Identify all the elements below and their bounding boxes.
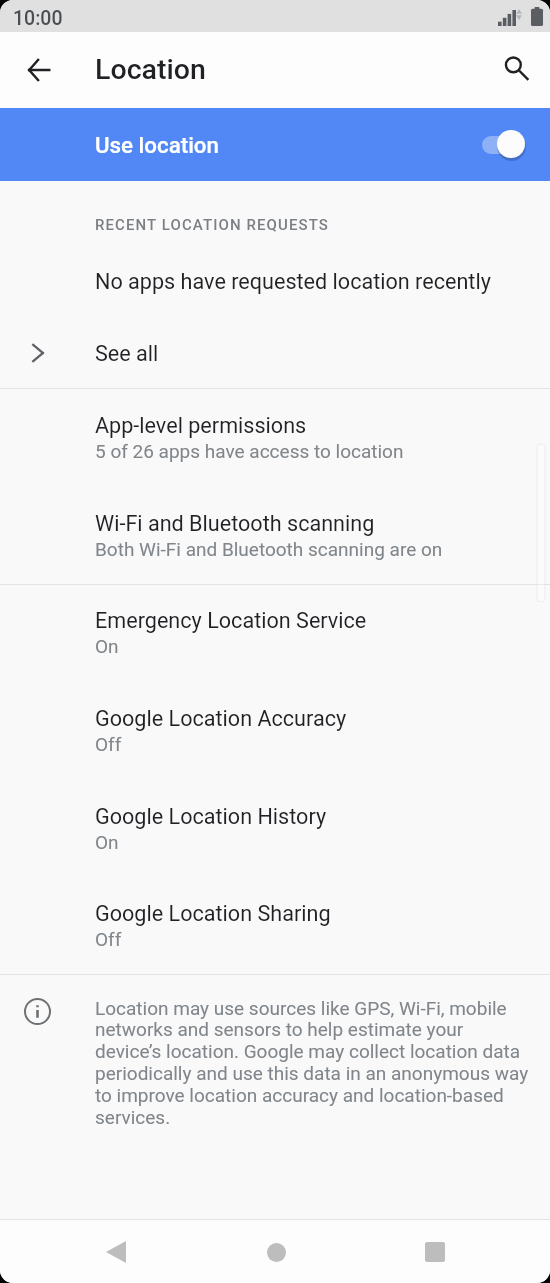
button[interactable]: Home [235,1221,317,1283]
staticText: Off [95,733,122,755]
staticText: Emergency Location Service [95,608,367,633]
button[interactable]: App-level permissions [0,413,550,489]
button[interactable]: Navigate up [14,46,62,94]
staticText: Google Location History [95,804,327,829]
button[interactable]: Wi-Fi and Bluetooth scanning [0,511,550,587]
button[interactable]: Recent apps [394,1221,476,1283]
staticText: 5 of 26 apps have access to location [95,440,404,462]
button[interactable]: Google Location History [0,804,550,880]
staticText: App-level permissions [95,413,307,438]
staticText: Google Location Accuracy [95,706,347,731]
button[interactable]: Emergency Location Service [0,608,550,684]
staticText: On [95,635,119,657]
button[interactable]: Google Location Accuracy [0,706,550,782]
staticText: Wi-Fi and Bluetooth scanning [95,511,375,536]
staticText: Location may use sources like GPS, Wi-Fi… [95,997,529,1129]
staticText: On [95,831,119,853]
staticText: Use location [95,132,219,158]
staticText: Google Location Sharing [95,901,331,926]
button[interactable]: No apps have requested location recently [0,256,550,306]
button[interactable]: Search [492,46,540,94]
button[interactable]: See all [0,328,550,378]
button[interactable]: Google Location Sharing [0,901,550,977]
staticText: Both Wi-Fi and Bluetooth scanning are on [95,538,443,560]
staticText: See all [95,341,159,366]
button[interactable]: Use location [0,108,550,181]
staticText: No apps have requested location recently [95,269,491,294]
staticText: RECENT LOCATION REQUESTS [95,216,329,234]
staticText: Off [95,928,122,950]
staticText: Location [95,53,206,86]
staticText: 10:00 [13,7,63,30]
button[interactable]: Back [76,1221,158,1283]
